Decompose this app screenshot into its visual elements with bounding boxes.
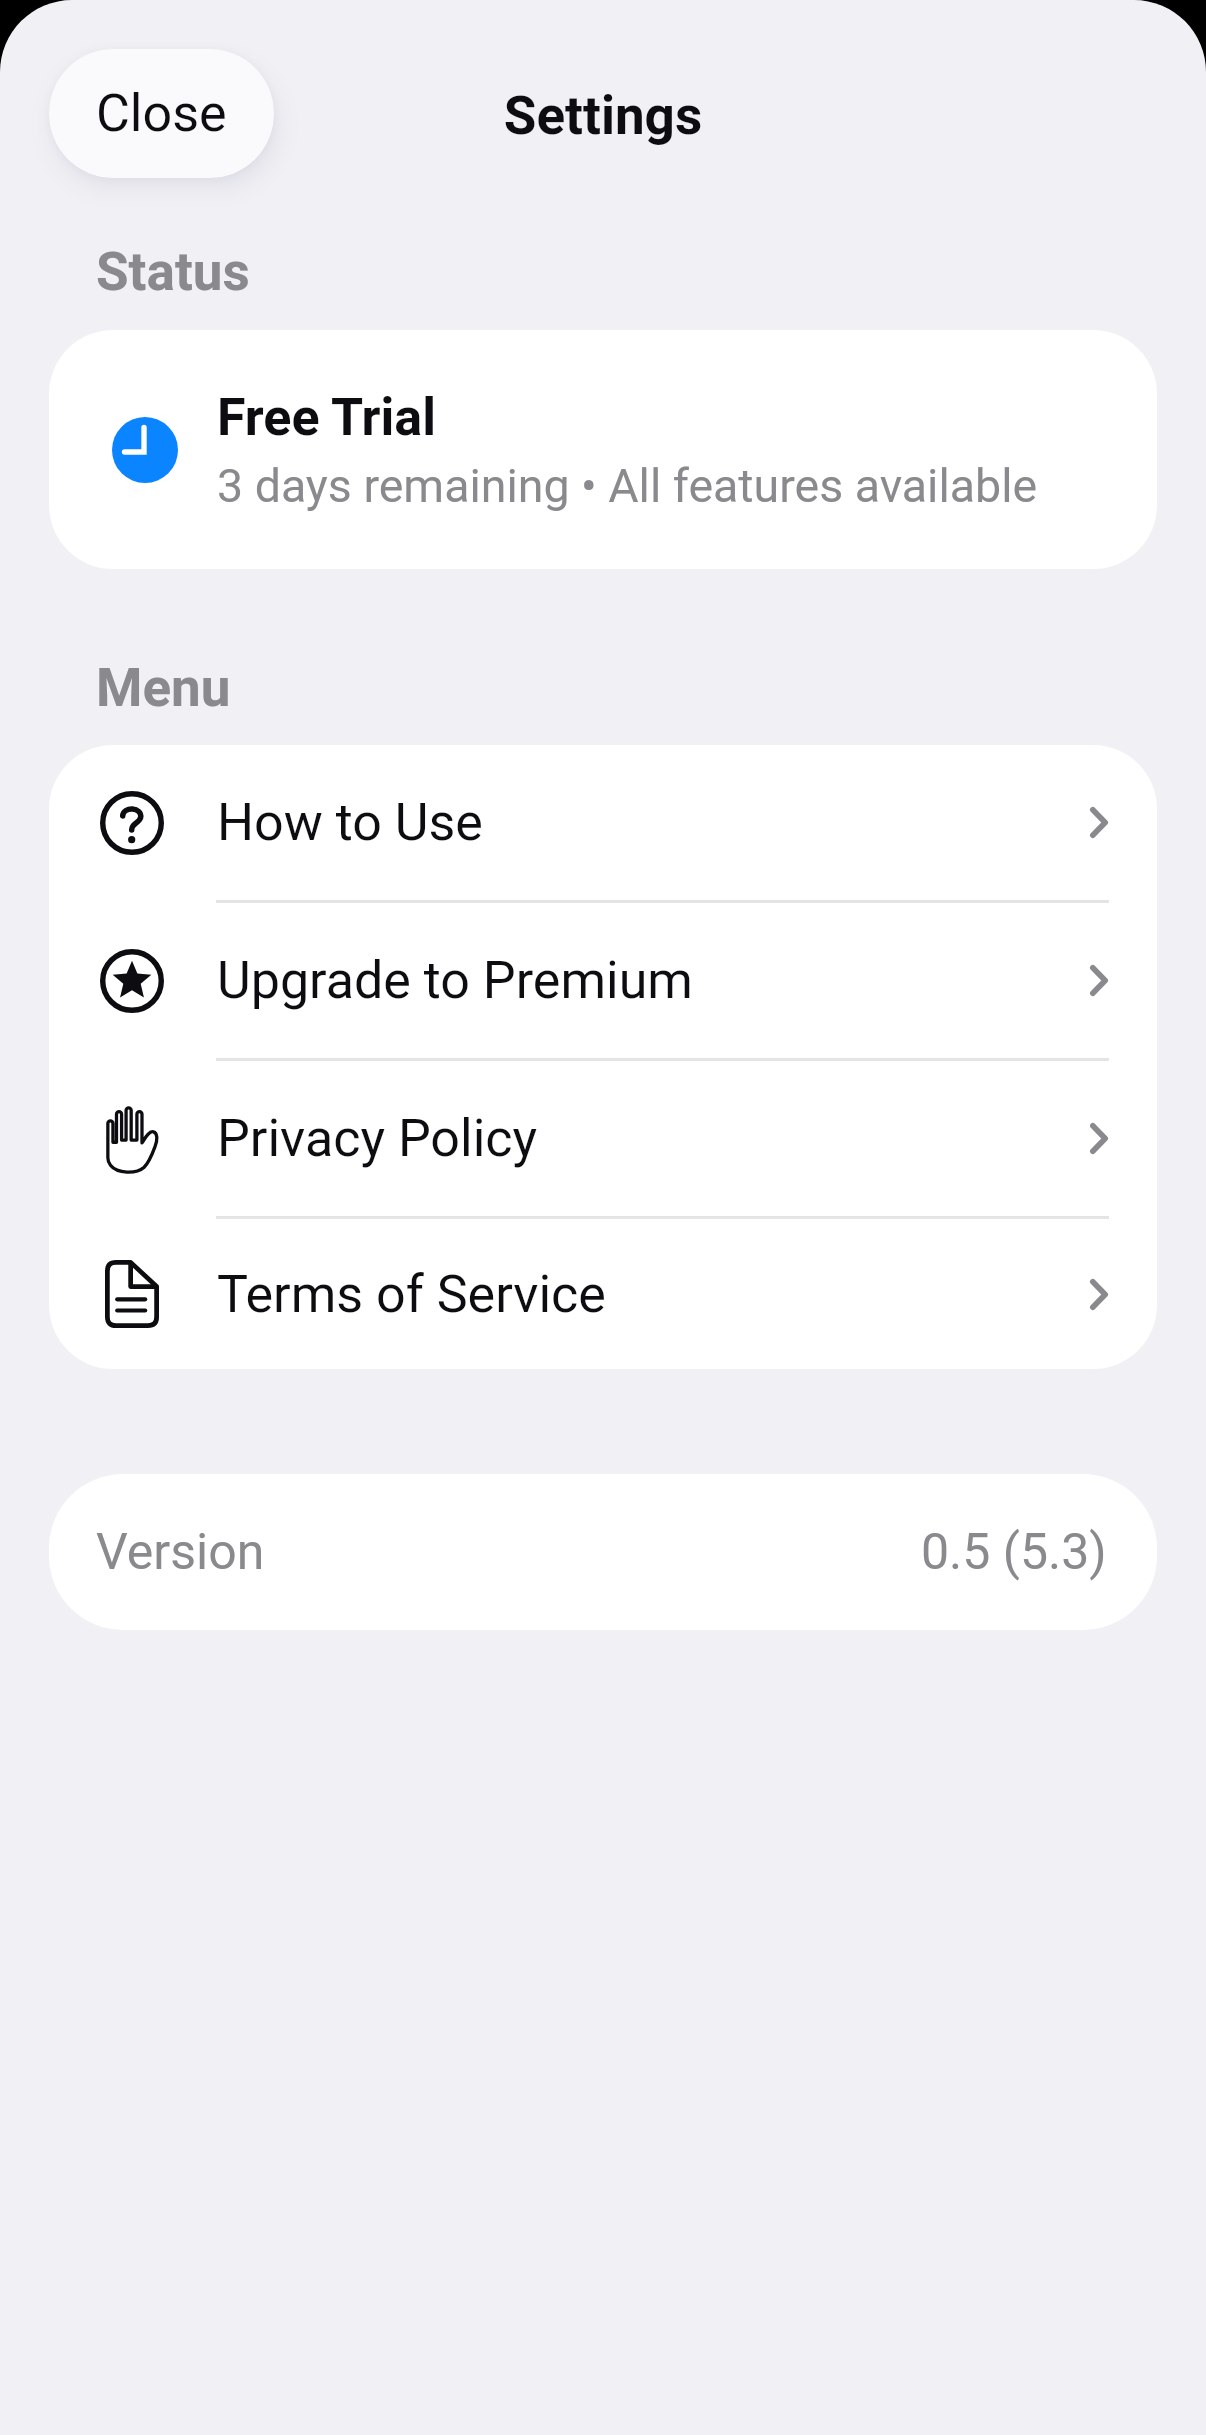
button[interactable]: Privacy Policy [49, 1061, 1157, 1216]
staticText: 3 days remaining • All features availabl… [217, 459, 1038, 513]
other: Open [1090, 1123, 1108, 1154]
other: Open [1090, 807, 1108, 838]
staticText: How to Use [217, 792, 1090, 853]
staticText: Privacy Policy [217, 1108, 1090, 1169]
staticText: Menu [96, 657, 231, 719]
button[interactable]: Upgrade to Premium [49, 903, 1157, 1058]
staticText: Close [96, 83, 227, 144]
staticText: Version [96, 1523, 265, 1582]
staticText: Terms of Service [217, 1264, 1090, 1325]
staticText: Status [96, 241, 250, 303]
staticText: Upgrade to Premium [217, 950, 1090, 1011]
button[interactable]: Terms of Service [49, 1219, 1157, 1369]
staticText: 0.5 (5.3) [921, 1523, 1107, 1582]
button[interactable]: Close [49, 49, 274, 178]
button[interactable]: How to Use [49, 745, 1157, 900]
staticText: Settings [0, 85, 1206, 147]
other: Open [1090, 1279, 1108, 1310]
other: Open [1090, 965, 1108, 996]
staticText: Free Trial [217, 387, 436, 448]
